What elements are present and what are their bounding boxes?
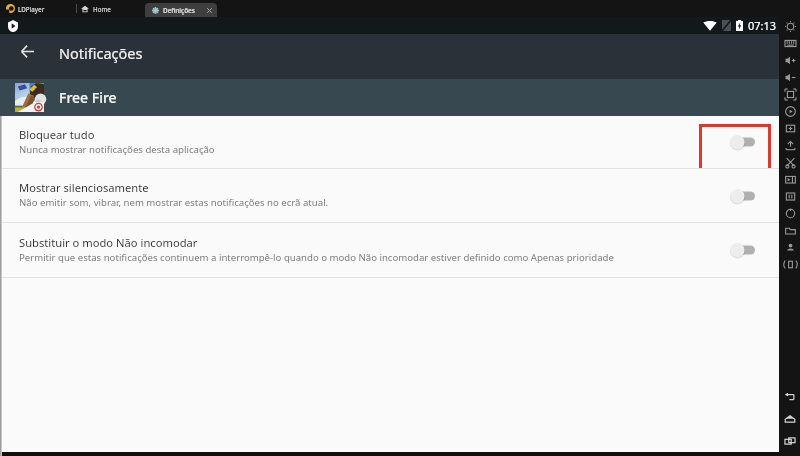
staticText: Permitir que estas notificações continue… <box>19 251 614 264</box>
staticText: Nunca mostrar notificações desta aplicaç… <box>19 143 215 156</box>
button[interactable]: Volume up <box>780 52 800 68</box>
button[interactable]: Substituir o modo Não incomodar <box>0 223 779 277</box>
staticText: Mostrar silenciosamente <box>19 180 149 195</box>
button[interactable]: Brightness <box>780 18 800 34</box>
button[interactable]: Home <box>780 410 800 428</box>
button[interactable]: Multi instance <box>780 188 800 204</box>
button[interactable]: Close tab <box>206 7 213 14</box>
staticText: Não emitir som, vibrar, nem mostrar esta… <box>19 196 329 209</box>
staticText: Definições <box>163 6 195 15</box>
staticText: Free Fire <box>59 88 117 107</box>
button[interactable]: Keyboard <box>780 35 800 51</box>
staticText: Home <box>93 5 111 13</box>
button[interactable]: Home <box>81 5 111 13</box>
button[interactable]: Video record <box>780 171 800 187</box>
button[interactable]: Toggle <box>731 132 759 152</box>
button[interactable]: Fullscreen <box>780 86 800 102</box>
button[interactable]: LDPlayer <box>6 4 45 13</box>
button[interactable]: Back <box>15 39 39 63</box>
button[interactable]: Back <box>780 388 800 406</box>
button[interactable]: Synchronizer <box>780 205 800 221</box>
button[interactable]: Screenshot <box>780 120 800 136</box>
button[interactable]: Definições <box>145 3 217 17</box>
button[interactable]: Toggle <box>731 186 759 206</box>
staticText: Bloquear tudo <box>19 127 95 142</box>
staticText: Substituir o modo Não incomodar <box>19 235 198 250</box>
button[interactable]: Volume down <box>780 69 800 85</box>
button[interactable]: Recents <box>780 432 800 450</box>
button[interactable]: Install APK <box>780 137 800 153</box>
staticText: 07:13 <box>748 18 777 33</box>
button[interactable]: Toggle <box>731 240 759 260</box>
button[interactable]: Shared folder <box>780 222 800 238</box>
button[interactable]: Account <box>780 239 800 255</box>
button[interactable]: Shake <box>780 256 800 272</box>
button[interactable]: Bloquear tudo <box>0 116 779 168</box>
button[interactable]: Record screen <box>780 103 800 119</box>
button[interactable]: Cut <box>780 154 800 170</box>
button[interactable]: Mostrar silenciosamente <box>0 169 779 222</box>
staticText: LDPlayer <box>18 5 45 13</box>
staticText: Notificações <box>59 43 143 63</box>
